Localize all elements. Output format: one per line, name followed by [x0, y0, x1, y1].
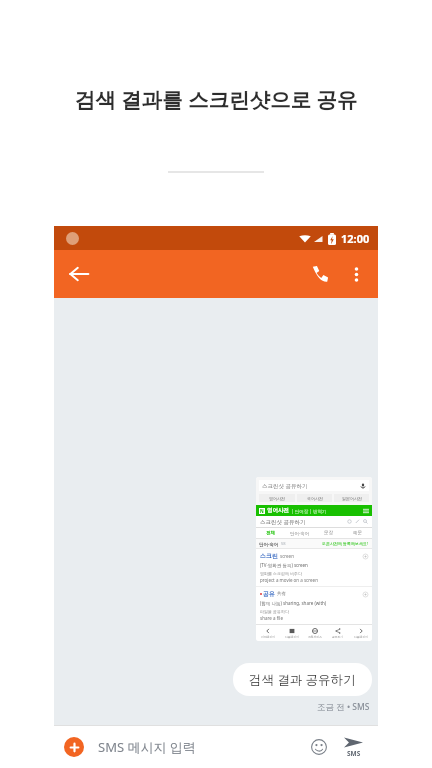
staticText: 스크린샷 공유하기 [260, 518, 347, 526]
button[interactable]: 다음페이지 [349, 625, 372, 641]
staticText: | 단어장 | 번역기 [291, 508, 327, 514]
staticText: 58 [281, 541, 286, 546]
staticText: 스크린샷 공유하기 [262, 482, 360, 490]
staticText: N [260, 508, 264, 514]
staticText: share a file [260, 615, 284, 621]
staticText: 12:00 [341, 231, 370, 246]
staticText: screen [280, 553, 294, 559]
button[interactable]: 문장 [314, 528, 343, 538]
button[interactable]: 예문 [343, 528, 372, 538]
staticText: 영화를 스크린에 비추다 [260, 571, 303, 576]
staticText: 검색 결과를 스크린샷으로 공유 [0, 85, 432, 113]
button[interactable]: Send SMS [338, 732, 368, 762]
button[interactable]: 공유하기 [326, 625, 349, 641]
button[interactable]: More options [338, 256, 374, 292]
button[interactable]: 전체서비스 [303, 625, 326, 641]
staticText: 조금 전 • SMS [317, 701, 370, 713]
button[interactable]: 검색 결과 공유하기 [233, 663, 372, 696]
staticText: 단어·숙어 [259, 541, 279, 547]
button[interactable]: 단어·숙어 [285, 528, 314, 538]
staticText: 오픈사전에 등록해보세요! [322, 541, 369, 546]
staticText: 국어사전 [307, 496, 323, 501]
button[interactable]: 이전페이지 [256, 625, 280, 641]
staticText: 共有 [277, 591, 286, 597]
button[interactable]: 다음페이지 [280, 625, 303, 641]
staticText: 다음페이지 [354, 635, 368, 639]
staticText: (함께 나눔) sharing, share (with) [260, 600, 327, 606]
staticText: 문장 [324, 530, 333, 536]
staticText: 전체 [266, 530, 275, 536]
staticText: 단어·숙어 [290, 530, 310, 536]
staticText: 일본어사전 [342, 496, 362, 501]
staticText: 공유하기 [332, 635, 344, 639]
button[interactable]: 영어사전 [259, 494, 295, 502]
staticText: 파일을 공유하다 [260, 609, 290, 614]
button[interactable]: Emoji [306, 734, 332, 760]
staticText: 검색 결과 공유하기 [249, 671, 356, 688]
staticText: 영어사전 [269, 496, 285, 501]
button[interactable]: Back [61, 256, 97, 292]
staticText: 예문 [353, 530, 362, 536]
button[interactable]: 국어사전 [297, 494, 332, 502]
staticText: 이전페이지 [261, 635, 275, 639]
button[interactable]: Shared screenshot [256, 477, 372, 641]
button[interactable]: Add attachment [64, 737, 84, 757]
staticText: 공유 [263, 590, 275, 598]
staticText: 스크린 [260, 552, 278, 560]
staticText: project a movie on a screen [260, 577, 318, 583]
staticText: 영어사전 [267, 507, 289, 514]
staticText: SMS 메시지 입력 [98, 738, 306, 756]
button[interactable]: Call [302, 256, 338, 292]
staticText: 다음페이지 [285, 635, 299, 639]
button[interactable]: 일본어사전 [334, 494, 369, 502]
button[interactable]: 전체 [256, 528, 285, 538]
staticText: (TV·영화관 등의) screen [260, 562, 308, 568]
staticText: SMS [347, 749, 361, 758]
staticText: 전체서비스 [308, 635, 322, 639]
